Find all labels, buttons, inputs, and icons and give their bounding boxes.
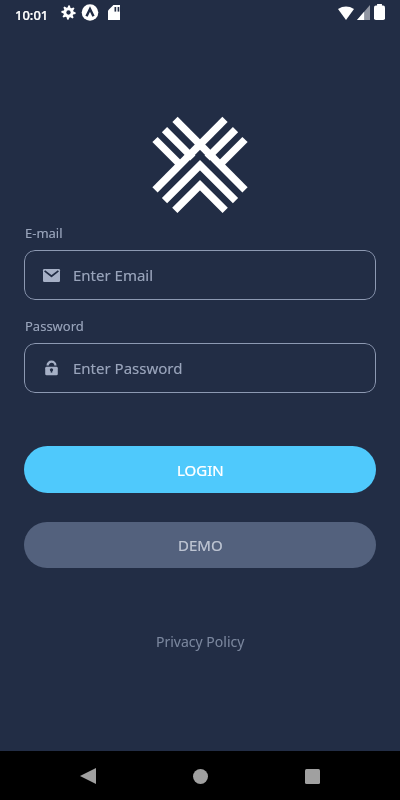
staticText: Enter Password bbox=[73, 358, 183, 378]
button[interactable]: Back bbox=[72, 760, 104, 792]
button[interactable]: Home bbox=[184, 760, 216, 792]
staticText: 10:01 bbox=[15, 6, 49, 24]
staticText: Enter Email bbox=[73, 265, 154, 285]
button[interactable]: DEMO bbox=[24, 522, 376, 568]
button[interactable]: LOGIN bbox=[24, 446, 376, 493]
staticText: E-mail bbox=[25, 224, 63, 242]
button[interactable]: Enter Password bbox=[24, 343, 376, 393]
button[interactable]: Enter Email bbox=[24, 250, 376, 300]
staticText: DEMO bbox=[178, 535, 223, 555]
staticText: Password bbox=[25, 317, 84, 335]
button[interactable]: Recents bbox=[296, 760, 328, 792]
button[interactable]: Privacy Policy bbox=[146, 628, 255, 655]
staticText: LOGIN bbox=[177, 460, 224, 480]
